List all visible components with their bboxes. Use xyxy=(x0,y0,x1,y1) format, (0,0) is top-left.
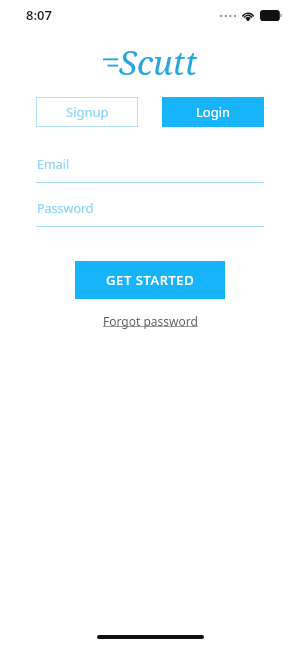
button[interactable]: Email xyxy=(36,156,264,183)
staticText: Scutt xyxy=(119,40,198,85)
button[interactable]: GET STARTED xyxy=(75,261,225,299)
button[interactable]: Password xyxy=(36,200,264,227)
staticText: 8:07 xyxy=(26,6,52,24)
staticText: Login xyxy=(196,103,231,121)
staticText: Email xyxy=(37,156,70,173)
button[interactable]: Forgot password xyxy=(97,310,204,332)
button[interactable]: Signup xyxy=(36,97,138,127)
staticText: Signup xyxy=(66,103,109,121)
staticText: Forgot password xyxy=(103,313,198,329)
staticText: Password xyxy=(37,200,94,217)
button[interactable]: Login xyxy=(162,97,264,127)
staticText: GET STARTED xyxy=(106,271,195,289)
